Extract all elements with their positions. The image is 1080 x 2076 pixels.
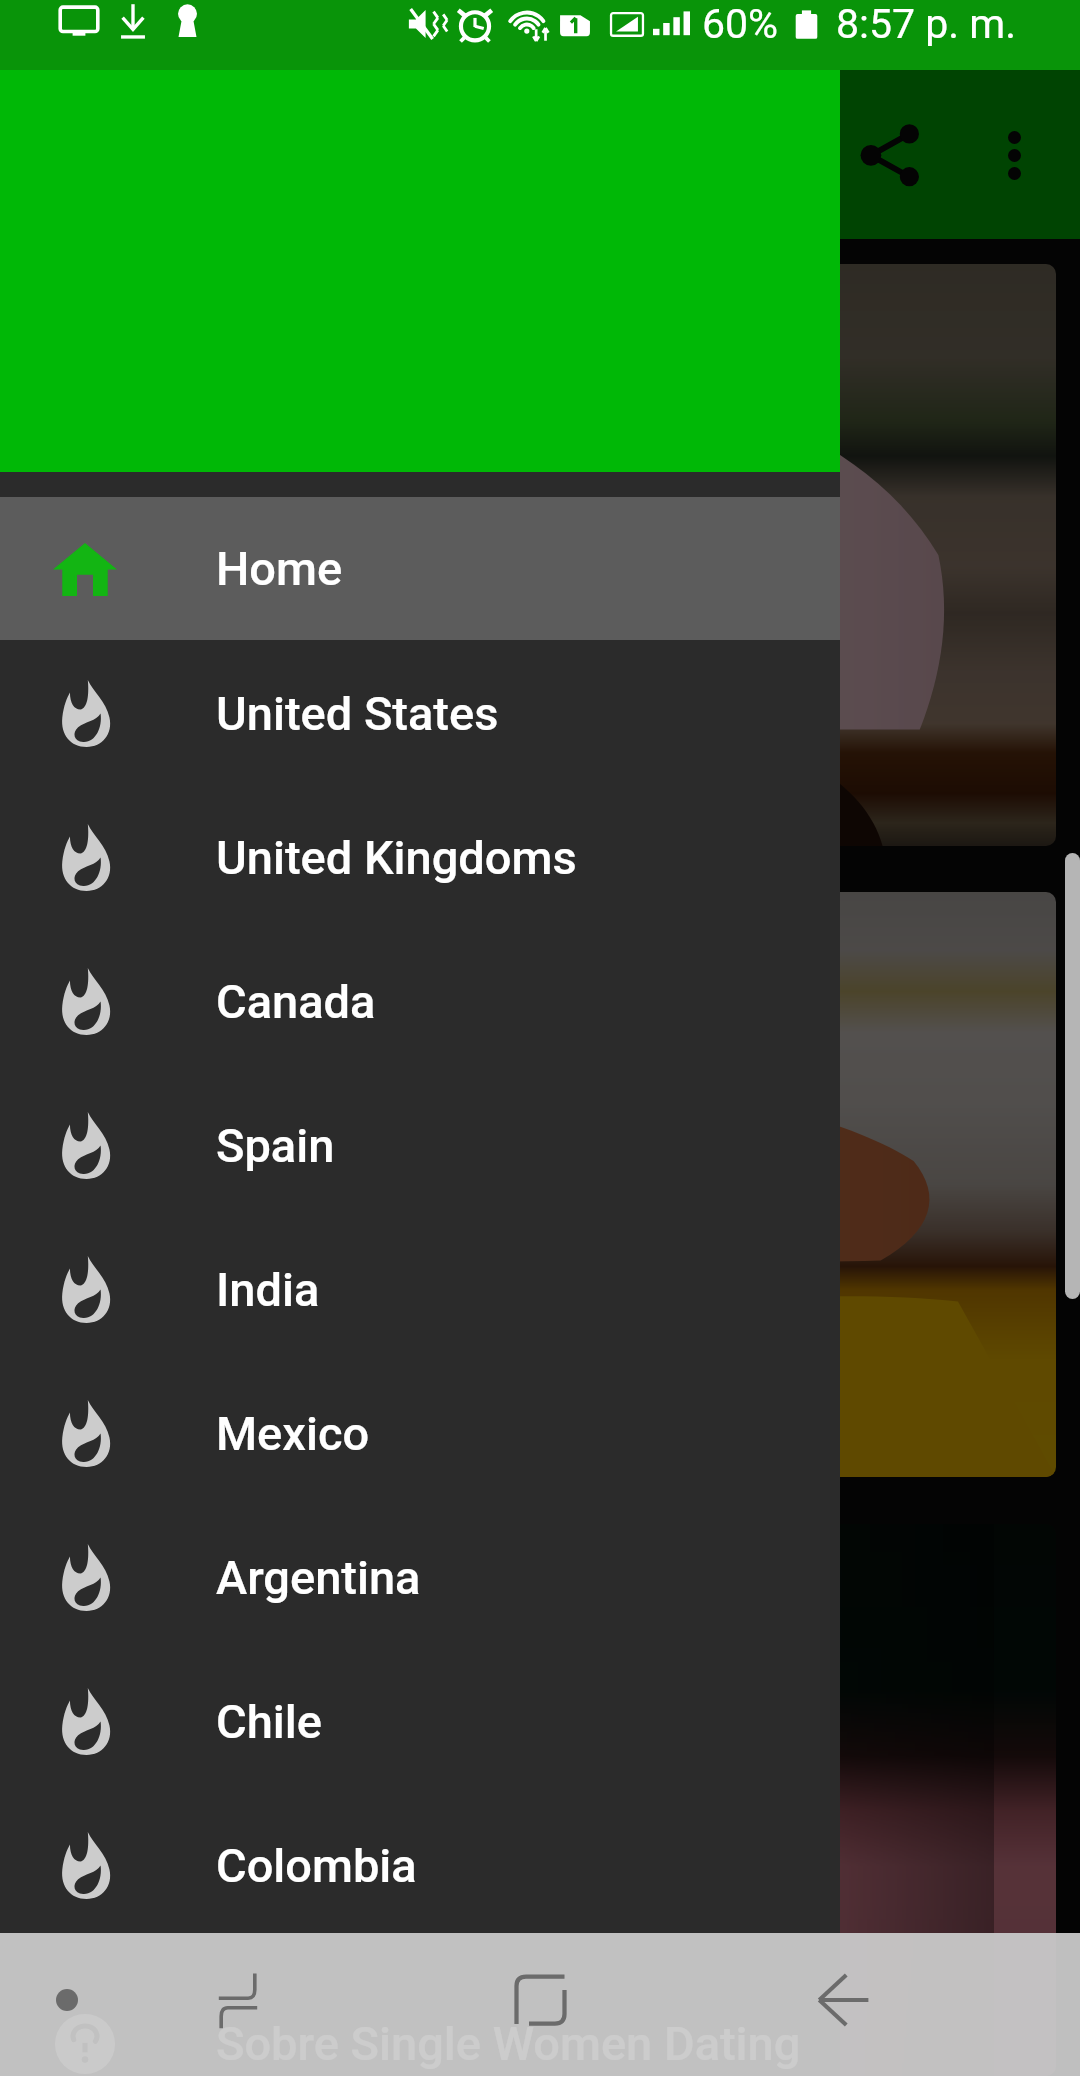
button[interactable]: Recent apps [188, 1950, 288, 2050]
staticText: Canada [216, 974, 376, 1029]
button[interactable]: Canada [0, 929, 840, 1073]
button[interactable]: India [0, 1217, 840, 1361]
staticText: United States [216, 686, 499, 741]
button[interactable]: Colombia [0, 1793, 840, 1937]
button[interactable]: Spain [0, 1073, 840, 1217]
staticText: Chile [216, 1694, 322, 1749]
button[interactable]: Mexico [0, 1361, 840, 1505]
button[interactable]: Chile [0, 1649, 840, 1793]
staticText: Argentina [216, 1550, 421, 1605]
staticText: 8:57 p. m. [836, 0, 1016, 48]
staticText: Mexico [216, 1406, 370, 1461]
staticText: Home [216, 541, 343, 596]
button[interactable] [24, 1524, 1056, 2076]
staticText: United Kingdoms [216, 830, 577, 885]
button[interactable]: Sobre Single Women Dating [0, 2011, 840, 2076]
button[interactable] [24, 264, 1056, 846]
button[interactable]: Argentina [0, 1505, 840, 1649]
staticText: 60% [702, 0, 779, 48]
staticText: Sobre Single Women Dating [216, 2016, 801, 2071]
staticText: Spain [216, 1118, 335, 1173]
staticText: Colombia [216, 1838, 417, 1893]
button[interactable]: Back [793, 1950, 893, 2050]
button[interactable]: Share [822, 85, 962, 225]
button[interactable]: Home [0, 497, 840, 640]
button[interactable]: United Kingdoms [0, 785, 840, 929]
button[interactable] [24, 892, 1056, 1477]
button[interactable]: United States [0, 641, 840, 785]
button[interactable]: More options [962, 85, 1066, 225]
button[interactable]: Home [490, 1950, 590, 2050]
staticText: India [216, 1262, 320, 1317]
